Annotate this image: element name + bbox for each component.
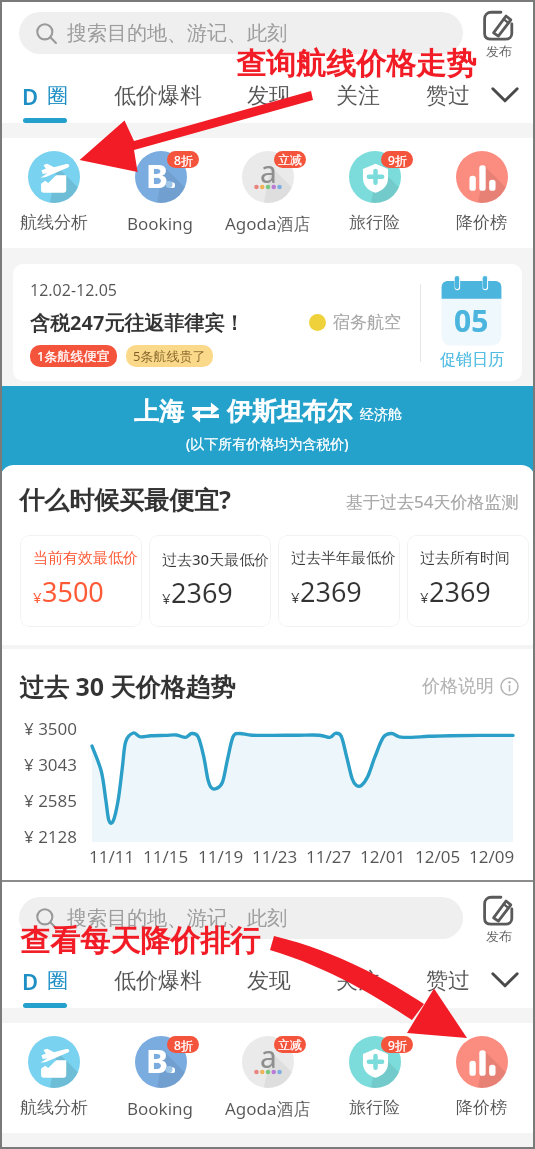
staticText: 圈 [47, 968, 68, 994]
staticText: 航线分析 [20, 1097, 88, 1118]
staticText: 赞过 [426, 82, 470, 110]
staticText: 旅行险 [349, 1097, 400, 1118]
staticText: 基于过去54天价格监测 [346, 490, 519, 513]
staticText: 伊斯坦布尔 [227, 396, 352, 427]
button[interactable]: 发现 [247, 959, 302, 1003]
button[interactable]: 展开更多 [486, 78, 524, 112]
button[interactable]: 9折 [321, 1023, 428, 1118]
staticText: 发布 [486, 928, 512, 944]
button[interactable]: 关注 [336, 74, 391, 118]
staticText: 1条航线便宜 [37, 347, 110, 365]
button[interactable]: 发布 [483, 895, 515, 944]
staticText: 搜索目的地、游记、此刻 [67, 906, 287, 931]
button[interactable]: 赞过 [426, 74, 481, 118]
staticText: 05 [454, 300, 489, 341]
button[interactable]: 低价爆料 [114, 74, 206, 118]
staticText: B. [146, 1038, 177, 1083]
button[interactable]: 12.02-12.05 [13, 264, 522, 381]
button[interactable]: a [214, 1023, 321, 1120]
staticText: 低价爆料 [114, 82, 202, 110]
staticText: ¥ 2585 [24, 789, 78, 812]
button[interactable]: 过去所有时间 [407, 535, 529, 627]
staticText: 2369 [300, 573, 362, 610]
button[interactable]: 发现 [247, 74, 302, 118]
staticText: Agoda酒店 [225, 1097, 311, 1120]
button[interactable]: D [22, 959, 112, 1003]
staticText: 什么时候买最便宜? [19, 482, 231, 516]
staticText: 9折 [388, 1037, 407, 1053]
staticText: 过去 30 天价格趋势 [19, 669, 236, 703]
staticText: 2369 [171, 574, 233, 611]
button[interactable]: 当前有效最低价 [20, 535, 142, 627]
staticText: a [260, 151, 277, 192]
staticText: 关注 [336, 967, 380, 995]
staticText: 赞过 [426, 967, 470, 995]
staticText: ¥ 3500 [24, 717, 78, 740]
button[interactable]: 低价爆料 [114, 959, 206, 1003]
staticText: 11/19 [198, 845, 244, 868]
button[interactable]: 赞过 [426, 959, 481, 1003]
staticText: Agoda酒店 [225, 212, 311, 235]
button[interactable]: 价格说明 [422, 675, 519, 698]
staticText: 圈 [47, 83, 68, 109]
staticText: 立减 [278, 1037, 302, 1052]
staticText: 过去半年最低价 [291, 549, 396, 568]
button[interactable]: B. [107, 138, 214, 235]
button[interactable]: 关注 [336, 959, 391, 1003]
staticText: 查询航线价格走势 [236, 45, 476, 83]
staticText: 降价榜 [456, 212, 507, 233]
button[interactable]: a [214, 138, 321, 235]
button[interactable]: 降价榜 [428, 138, 535, 233]
staticText: 发现 [247, 967, 291, 995]
staticText: (以下所有价格均为含税价) [186, 434, 349, 453]
staticText: 11/15 [143, 845, 189, 868]
button[interactable]: 9折 [321, 138, 428, 233]
staticText: 9折 [388, 152, 407, 168]
staticText: 11/23 [252, 845, 298, 868]
staticText: 航线分析 [20, 212, 88, 233]
staticText: 11/11 [89, 845, 135, 868]
staticText: a [260, 1036, 277, 1077]
button[interactable]: 展开更多 [486, 963, 524, 997]
staticText: 搜索目的地、游记、此刻 [67, 21, 287, 46]
staticText: 12/05 [415, 845, 461, 868]
button[interactable]: 05 [421, 276, 522, 370]
button[interactable]: 航线分析 [0, 138, 107, 233]
button[interactable]: 搜索目的地、游记、此刻 [19, 12, 463, 54]
staticText: 发布 [486, 43, 512, 59]
staticText: 宿务航空 [333, 312, 401, 333]
button[interactable]: 过去半年最低价 [278, 535, 400, 627]
staticText: 3500 [42, 573, 104, 610]
staticText: 含税247元往返菲律宾！ [30, 309, 245, 336]
staticText: 5条航线贵了 [133, 347, 206, 365]
staticText: 查看每天降价排行 [20, 922, 260, 960]
staticText: 当前有效最低价 [33, 549, 138, 568]
button[interactable]: 发布 [483, 10, 515, 59]
staticText: 12/01 [360, 845, 406, 868]
staticText: 立减 [278, 152, 302, 167]
staticText: 过去所有时间 [420, 549, 510, 568]
staticText: 旅行险 [349, 212, 400, 233]
staticText: 8折 [174, 1037, 193, 1053]
button[interactable]: 搜索目的地、游记、此刻 [19, 897, 463, 939]
staticText: ¥ 2128 [24, 825, 78, 848]
staticText: 2369 [429, 573, 491, 610]
button[interactable]: D [22, 74, 112, 118]
staticText: Booking [127, 1097, 194, 1120]
staticText: D [22, 966, 39, 996]
staticText: 关注 [336, 82, 380, 110]
staticText: 价格说明 [422, 675, 494, 698]
staticText: ¥ [33, 587, 42, 607]
staticText: 低价爆料 [114, 967, 202, 995]
staticText: ¥ [291, 587, 300, 607]
button[interactable]: 降价榜 [428, 1023, 535, 1118]
staticText: 经济舱 [360, 406, 402, 424]
button[interactable]: B. [107, 1023, 214, 1120]
staticText: 降价榜 [456, 1097, 507, 1118]
staticText: D [22, 81, 39, 111]
staticText: 促销日历 [440, 350, 504, 370]
button[interactable]: 航线分析 [0, 1023, 107, 1118]
staticText: 11/27 [306, 845, 352, 868]
button[interactable]: 过去30天最低价 [149, 535, 271, 627]
staticText: 上海 [134, 396, 184, 427]
